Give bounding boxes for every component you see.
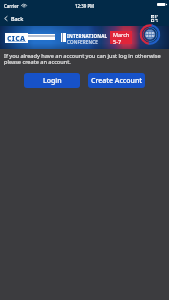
staticText: 5-7 xyxy=(113,38,122,44)
staticText: If you already have an account you can j… xyxy=(4,52,165,66)
button[interactable]: Scan QR code xyxy=(148,11,163,26)
staticText: Login xyxy=(43,76,62,86)
staticText: March xyxy=(113,31,130,38)
staticText: Carrier xyxy=(4,3,19,9)
button[interactable]: Create Account xyxy=(88,73,145,88)
staticText: CONFERENCE xyxy=(67,39,98,45)
staticText: Create Account xyxy=(91,76,143,86)
button[interactable]: Login xyxy=(24,73,80,88)
staticText: Back xyxy=(11,15,24,22)
staticText: CICA xyxy=(7,34,26,44)
button[interactable]: Back xyxy=(0,13,29,24)
staticText: INTERNATIONAL xyxy=(67,33,108,39)
staticText: 12:39 PM xyxy=(75,3,95,9)
